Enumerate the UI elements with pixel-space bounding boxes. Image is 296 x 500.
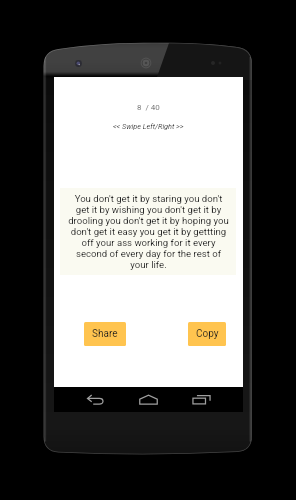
button[interactable]: Share [84,322,126,346]
button[interactable]: Home [138,387,158,412]
button[interactable]: Recent apps [191,387,211,412]
staticText: << Swipe Left/Right >> [113,122,184,131]
button[interactable]: Back [85,387,105,412]
staticText: Share [92,328,118,340]
staticText: Copy [196,328,219,340]
button[interactable]: Copy [188,322,226,346]
staticText: You don't get it by staring you don't ge… [68,193,229,270]
staticText: 8 / 40 [137,103,160,112]
button[interactable]: You don't get it by staring you don't ge… [60,188,236,275]
